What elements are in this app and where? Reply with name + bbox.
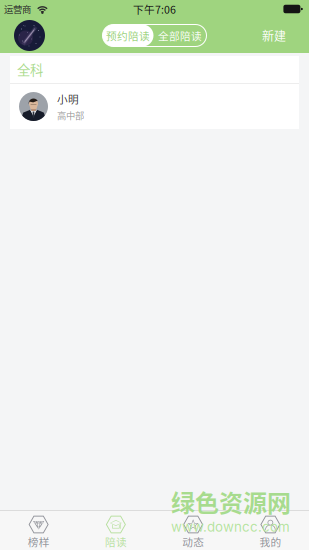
staticText: 全科 [17, 60, 43, 79]
staticText: 绿色资源网 [171, 484, 291, 519]
button[interactable]: 我的 [232, 511, 309, 550]
button[interactable]: Profile [14, 20, 45, 51]
button[interactable]: 陪读 [77, 511, 154, 550]
staticText: 高中部 [57, 108, 84, 122]
staticText: 动态 [182, 534, 204, 549]
staticText: 榜样 [28, 534, 50, 549]
button[interactable]: 榜样 [0, 511, 77, 550]
staticText: 运营商 [4, 2, 31, 16]
staticText: 全部陪读 [158, 28, 202, 43]
button[interactable]: 新建 [262, 27, 286, 44]
button[interactable]: 预约陪读 [102, 24, 153, 46]
staticText: 我的 [259, 534, 281, 549]
staticText: www.downcc.com [171, 519, 290, 535]
button[interactable]: 动态 [154, 511, 232, 550]
staticText: 预约陪读 [106, 28, 150, 43]
staticText: 下午7:06 [133, 1, 176, 17]
button[interactable]: 小明 [10, 84, 299, 129]
staticText: 新建 [262, 27, 286, 44]
staticText: 陪读 [105, 534, 127, 549]
staticText: 小明 [57, 91, 79, 106]
button[interactable]: 全部陪读 [153, 24, 206, 46]
